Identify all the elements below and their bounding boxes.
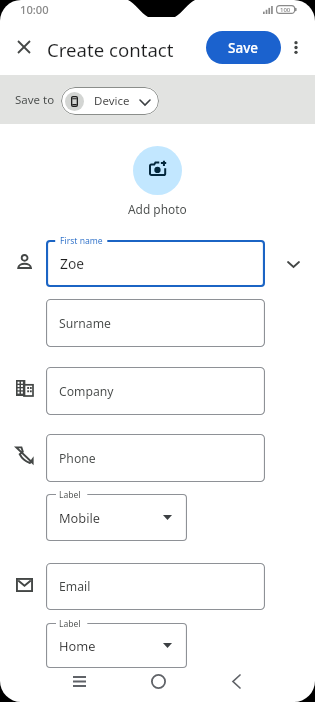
staticText: Device xyxy=(94,93,130,109)
staticText: Create contact xyxy=(47,37,174,62)
staticText: Label xyxy=(59,489,81,501)
staticText: 100 xyxy=(280,6,291,14)
button[interactable]: Email xyxy=(46,563,265,610)
button[interactable]: First name xyxy=(46,240,265,287)
button[interactable]: Label xyxy=(46,623,187,668)
staticText: Save to xyxy=(15,92,55,108)
staticText: First name xyxy=(60,235,103,247)
staticText: 10:00 xyxy=(20,2,49,17)
button[interactable]: Add photo xyxy=(0,146,315,217)
button[interactable]: Expand name fields xyxy=(277,248,309,280)
staticText: Email xyxy=(59,578,91,595)
staticText: Zoe xyxy=(60,254,85,273)
button[interactable]: Close xyxy=(8,31,40,63)
button[interactable]: More options xyxy=(282,33,310,61)
button[interactable]: Save xyxy=(206,31,281,64)
button[interactable]: Label xyxy=(46,494,187,541)
button[interactable]: Phone xyxy=(46,434,265,482)
button[interactable]: Device xyxy=(61,87,159,115)
button[interactable]: Company xyxy=(46,367,265,415)
button[interactable]: Surname xyxy=(46,299,265,347)
staticText: Surname xyxy=(59,315,111,332)
staticText: Home xyxy=(59,637,96,654)
staticText: Save xyxy=(228,39,259,57)
button[interactable]: Back xyxy=(218,663,254,699)
staticText: Label xyxy=(59,618,81,630)
button[interactable]: Home xyxy=(140,663,176,699)
staticText: Mobile xyxy=(59,509,101,526)
staticText: Company xyxy=(59,383,114,400)
staticText: Phone xyxy=(59,450,96,467)
button[interactable]: Recent apps xyxy=(61,663,97,699)
staticText: Add photo xyxy=(128,201,187,217)
